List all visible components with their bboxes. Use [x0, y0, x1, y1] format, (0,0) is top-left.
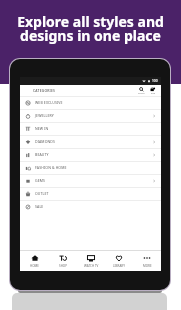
button[interactable]: WEB EXCLUSIVE [20, 96, 161, 109]
button[interactable]: GEMS [20, 174, 161, 187]
staticText: WATCH TV [84, 264, 99, 268]
staticText: LIBRARY [113, 264, 125, 268]
button[interactable]: SALE [20, 200, 161, 213]
button[interactable]: DIAMONDS [20, 135, 161, 148]
button[interactable]: LIBRARY [105, 250, 133, 271]
button[interactable]: HOME [20, 250, 49, 271]
button[interactable]: JEWELLERY [20, 109, 161, 122]
staticText: FASHION & HOME [35, 165, 67, 170]
staticText: NEW IN [35, 126, 49, 131]
staticText: SALE [35, 204, 44, 209]
staticText: Bag [151, 92, 155, 95]
staticText: CATEGORIES [33, 88, 56, 93]
button[interactable]: SHOP [49, 250, 77, 271]
staticText: Explore all styles and designs in one pl… [0, 12, 181, 45]
staticText: OUTLET [35, 191, 49, 196]
staticText: GEMS [35, 178, 46, 183]
staticText: MORE [143, 264, 152, 268]
staticText: 100 [152, 79, 158, 83]
staticText: JEWELLERY [35, 113, 54, 118]
staticText: SHOP [59, 264, 68, 268]
button[interactable]: Search [136, 85, 147, 96]
button[interactable]: OUTLET [20, 187, 161, 200]
staticText: Search [138, 92, 145, 95]
button[interactable]: Bag [147, 85, 158, 96]
button[interactable]: WATCH TV [77, 250, 105, 271]
button[interactable]: BEAUTY [20, 148, 161, 161]
staticText: WEB EXCLUSIVE [35, 100, 63, 105]
button[interactable]: NEW IN [20, 122, 161, 135]
staticText: DIAMONDS [35, 139, 55, 144]
button[interactable]: MORE [133, 250, 161, 271]
staticText: BEAUTY [35, 152, 49, 157]
staticText: HOME [30, 264, 39, 268]
button[interactable]: FASHION & HOME [20, 161, 161, 174]
